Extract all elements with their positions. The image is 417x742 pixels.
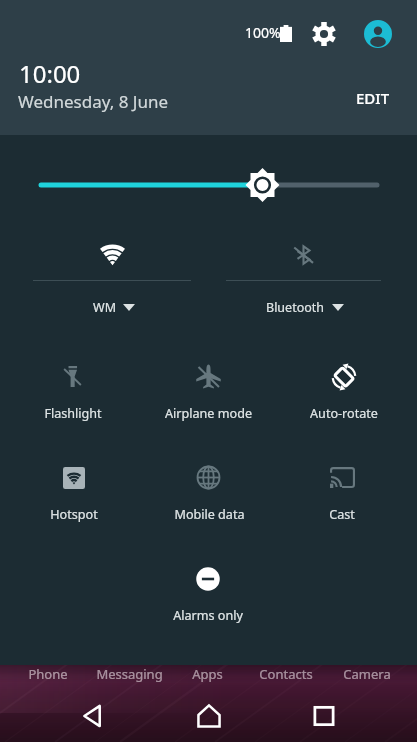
button[interactable]: Brightness [0,163,417,207]
staticText: Messaging [96,665,163,683]
button[interactable]: Camera [322,663,412,685]
staticText: Mobile data [174,506,245,523]
staticText: Auto-rotate [310,405,378,422]
button[interactable]: WM [93,296,135,318]
button[interactable]: Recent apps [296,688,352,742]
staticText: 100% [245,23,281,42]
staticText: 10:00 [19,57,81,90]
staticText: Flashlight [44,405,102,422]
staticText: Contacts [259,665,313,683]
button[interactable]: Contacts [241,663,331,685]
button[interactable]: Airplane mode [141,344,275,428]
button[interactable]: Alarms only [141,546,275,630]
staticText: Apps [192,665,223,683]
button[interactable]: Settings [304,14,344,54]
staticText: Hotspot [50,506,98,523]
staticText: Bluetooth [266,299,325,316]
button[interactable]: Cast [275,445,409,529]
staticText: Phone [28,665,68,683]
staticText: EDIT [356,88,390,108]
staticText: Camera [343,665,391,683]
staticText: Cast [329,506,355,523]
staticText: Alarms only [173,607,243,624]
staticText: Airplane mode [165,405,252,422]
button[interactable]: Home [181,688,237,742]
button[interactable]: Phone [3,663,93,685]
staticText: Wednesday, 8 June [18,90,169,113]
staticText: WM [93,299,116,316]
button[interactable]: Messaging [84,663,174,685]
button[interactable]: Flashlight [6,344,140,428]
button[interactable]: EDIT [356,88,390,108]
button[interactable]: Bluetooth [266,296,344,318]
button[interactable]: Auto-rotate [277,344,411,428]
button[interactable]: Hotspot [7,445,141,529]
button[interactable]: User profile [358,14,398,54]
button[interactable]: Mobile data [142,445,276,529]
button[interactable]: Apps [162,663,252,685]
button[interactable]: WM [0,220,209,280]
button[interactable]: Bluetooth [209,220,417,280]
button[interactable]: Back [65,688,121,742]
